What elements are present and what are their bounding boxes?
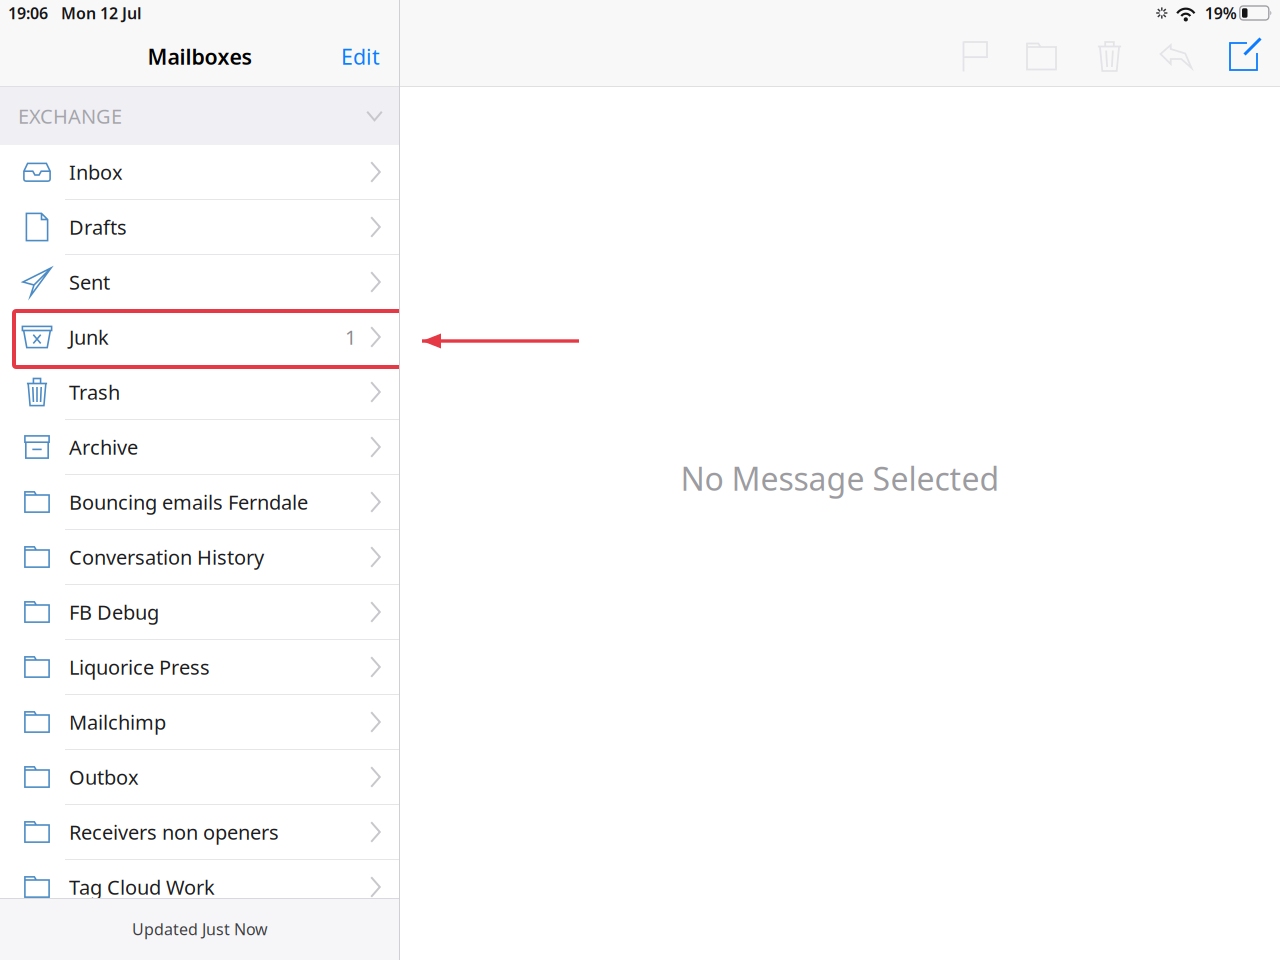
staticText: Mon 12 Jul (61, 2, 142, 24)
button[interactable]: Junk (0, 310, 400, 365)
staticText: 19% (1205, 2, 1237, 24)
staticText: Tag Cloud Work (69, 874, 215, 900)
button[interactable]: Conversation History (0, 530, 400, 585)
button[interactable]: Archive (0, 420, 400, 475)
staticText: 1 (345, 324, 356, 350)
staticText: 19:06 (8, 2, 48, 24)
button[interactable]: Outbox (0, 750, 400, 805)
button[interactable]: Sent (0, 255, 400, 310)
button[interactable]: Reply (1144, 26, 1208, 87)
staticText: Inbox (69, 159, 123, 185)
staticText: Archive (69, 434, 138, 460)
staticText: Liquorice Press (69, 654, 210, 680)
button[interactable]: Move to folder (1008, 26, 1075, 87)
button[interactable]: Flag (942, 26, 1008, 87)
button[interactable]: Delete (1075, 26, 1144, 87)
staticText: Trash (69, 379, 120, 405)
staticText: Junk (69, 324, 109, 350)
staticText: Conversation History (69, 544, 264, 570)
staticText: Receivers non openers (69, 819, 279, 845)
button[interactable]: Trash (0, 365, 400, 420)
staticText: Edit (341, 42, 380, 71)
staticText: Sent (69, 269, 110, 295)
staticText: Drafts (69, 214, 127, 240)
button[interactable]: Mailchimp (0, 695, 400, 750)
staticText: Updated Just Now (132, 918, 268, 940)
staticText: No Message Selected (680, 457, 999, 499)
button[interactable]: FB Debug (0, 585, 400, 640)
button[interactable]: Receivers non openers (0, 805, 400, 860)
staticText: Bouncing emails Ferndale (69, 489, 308, 515)
staticText: Outbox (69, 764, 139, 790)
button[interactable]: Edit (327, 26, 394, 86)
button[interactable]: Bouncing emails Ferndale (0, 475, 400, 530)
button[interactable]: Drafts (0, 200, 400, 255)
button[interactable]: Liquorice Press (0, 640, 400, 695)
button[interactable]: Inbox (0, 145, 400, 200)
staticText: Mailboxes (147, 42, 252, 71)
button[interactable]: EXCHANGE (0, 87, 400, 145)
staticText: Mailchimp (69, 709, 166, 735)
staticText: FB Debug (69, 599, 159, 625)
staticText: EXCHANGE (18, 103, 122, 129)
button[interactable]: Tag Cloud Work (0, 860, 400, 915)
button[interactable]: Compose (1208, 26, 1280, 87)
